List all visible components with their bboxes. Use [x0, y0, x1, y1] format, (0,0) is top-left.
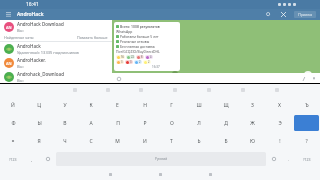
button[interactable]: Ъ [293, 96, 320, 114]
button[interactable]: Б [212, 132, 239, 150]
button[interactable]: Ю [239, 132, 266, 150]
button[interactable]: К [78, 96, 104, 114]
button[interactable]: AndroHack [0, 42, 112, 56]
button[interactable]: Л [185, 114, 212, 132]
staticText: WhatsApp [116, 29, 133, 34]
button[interactable]: П [104, 114, 131, 132]
button[interactable]: Э [266, 114, 293, 132]
button[interactable]: Щ [212, 96, 239, 114]
button[interactable]: Recents [205, 169, 215, 179]
staticText: 16:41 [26, 1, 39, 8]
staticText: Всего: 1008 результатов [120, 24, 160, 29]
staticText: Найденные чаты [4, 35, 34, 40]
button[interactable]: М [104, 132, 131, 150]
button[interactable]: AndroHack [17, 11, 44, 18]
button[interactable]: Ж [239, 114, 266, 132]
staticText: Удаленный: 13335 подписчиков [17, 50, 79, 55]
staticText: Т [170, 138, 173, 145]
button[interactable]: Clipboard [58, 84, 91, 96]
button[interactable]: У [52, 96, 78, 114]
button[interactable]: Всего: 1008 результатов [114, 22, 180, 71]
button[interactable]: 56 [116, 55, 125, 59]
button[interactable]: AN [0, 20, 112, 34]
button[interactable]: Правка [294, 11, 316, 18]
button[interactable]: З [239, 96, 266, 114]
button[interactable]: 3 [116, 60, 124, 64]
button[interactable]: Sticker [124, 84, 158, 96]
button[interactable]: GIF [91, 84, 124, 96]
staticText: 8 [141, 55, 143, 59]
button[interactable]: 2 [134, 60, 142, 64]
button[interactable]: Ц [26, 96, 52, 114]
button[interactable]: Х [266, 96, 293, 114]
button[interactable]: Attach [300, 75, 307, 82]
button[interactable]: Androhack_Download [0, 70, 112, 83]
staticText: Ь [197, 138, 201, 145]
button[interactable]: Emoji [40, 150, 56, 168]
button[interactable]: More [172, 71, 178, 77]
staticText: Ш [196, 102, 202, 109]
button[interactable]: Е [104, 96, 131, 114]
button[interactable]: ? [293, 132, 320, 150]
staticText: Ю [250, 138, 255, 145]
staticText: Р [143, 120, 147, 127]
staticText: Х [278, 102, 281, 109]
button[interactable]: Mic [260, 84, 294, 96]
button[interactable]: Home [155, 169, 165, 179]
staticText: И [143, 138, 147, 145]
staticText: О [170, 120, 174, 127]
button[interactable]: 8 [136, 55, 144, 59]
button[interactable]: Русский [56, 152, 266, 166]
button[interactable]: 4 [145, 55, 153, 59]
button[interactable]: Ы [26, 114, 52, 132]
button[interactable]: 3 [125, 60, 133, 64]
staticText: AN [6, 61, 12, 66]
button[interactable]: Search [264, 10, 273, 19]
staticText: 22 [131, 55, 134, 59]
button[interactable]: AN [0, 56, 112, 70]
button[interactable]: Menu [4, 10, 13, 19]
button[interactable]: Close [279, 10, 288, 19]
button[interactable]: Voice [266, 150, 282, 168]
button[interactable]: Back [105, 169, 115, 179]
button[interactable]: ! [266, 132, 293, 150]
staticText: ? [305, 138, 308, 145]
button[interactable]: Н [131, 96, 158, 114]
button[interactable]: О [158, 114, 185, 132]
button[interactable]: Ф [0, 114, 26, 132]
button[interactable]: Scroll to bottom [304, 71, 312, 79]
staticText: ?123 [9, 157, 17, 162]
button[interactable]: Emoji [115, 75, 122, 82]
button[interactable]: Theme [226, 84, 260, 96]
button[interactable]: Т [158, 132, 185, 150]
button[interactable]: ?123 [2, 150, 24, 168]
button[interactable]: Д [212, 114, 239, 132]
button[interactable]: С [78, 132, 104, 150]
button[interactable]: Р [131, 114, 158, 132]
button[interactable]: 2 [143, 60, 151, 64]
button[interactable]: Й [0, 96, 26, 114]
button[interactable]: Ч [52, 132, 78, 150]
staticText: Ж [250, 120, 255, 127]
button[interactable]: Settings [192, 84, 226, 96]
button[interactable]: 22 [126, 55, 135, 59]
button[interactable]: Я [26, 132, 52, 150]
button[interactable]: Search [294, 115, 319, 131]
button[interactable]: ?123 [296, 150, 318, 168]
button[interactable]: Translate [158, 84, 192, 96]
staticText: П [116, 120, 120, 127]
button[interactable]: Ш [185, 96, 212, 114]
button[interactable]: Г [158, 96, 185, 114]
button[interactable]: В [52, 114, 78, 132]
button[interactable]: Shift [0, 132, 26, 150]
button[interactable]: И [131, 132, 158, 150]
staticText: , [31, 157, 33, 162]
button[interactable]: Ь [185, 132, 212, 150]
staticText: Й [11, 102, 15, 109]
button[interactable]: Voice message [310, 75, 317, 82]
button[interactable]: А [78, 114, 104, 132]
staticText: 2 [148, 60, 150, 64]
staticText: Э [278, 120, 282, 127]
